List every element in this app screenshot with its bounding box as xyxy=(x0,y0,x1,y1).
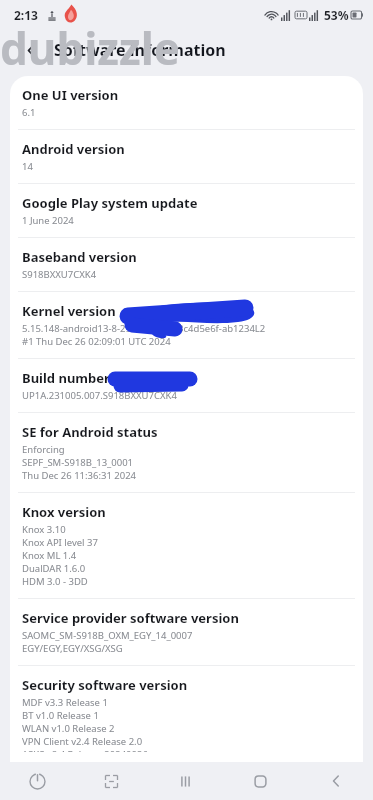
button[interactable]: Baseband version xyxy=(10,238,363,291)
button[interactable]: Kernel version xyxy=(10,292,363,358)
staticText: 5.15.148-android13-8-29548-g1a2b3c4d5e6f… xyxy=(22,322,266,335)
staticText: SE for Android status xyxy=(22,423,158,441)
staticText: SEPF_SM-S918B_13_0001 xyxy=(22,456,134,469)
staticText: Security software version xyxy=(22,676,188,694)
button[interactable]: One UI version xyxy=(10,76,363,129)
button[interactable]: Back xyxy=(14,33,48,67)
staticText: Build number xyxy=(22,369,110,387)
staticText: 14 xyxy=(22,160,33,173)
staticText: WLAN v1.0 Release 2 xyxy=(22,722,115,735)
button[interactable]: Power xyxy=(0,762,74,800)
staticText: Android version xyxy=(22,140,125,158)
staticText: 1 June 2024 xyxy=(22,214,74,227)
staticText: MDF v3.3 Release 1 xyxy=(22,696,108,709)
staticText: UP1A.231005.007.S918BXXU7CXK4 xyxy=(22,389,177,402)
staticText: SAOMC_SM-S918B_OXM_EGY_14_0007 xyxy=(22,629,193,642)
staticText: Enforcing xyxy=(22,443,65,456)
button[interactable]: Build number xyxy=(10,359,363,412)
staticText: S918BXXU7CXK4 xyxy=(22,268,97,281)
staticText: HDM 3.0 - 3DD xyxy=(22,575,88,588)
staticText: One UI version xyxy=(22,86,119,104)
staticText: Service provider software version xyxy=(22,609,239,627)
button[interactable]: Knox version xyxy=(10,493,363,598)
staticText: VPN Client v2.4 Release 2.0 xyxy=(22,735,143,748)
button[interactable]: SE for Android status xyxy=(10,413,363,492)
button[interactable]: Security software version xyxy=(10,666,363,762)
staticText: EGY/EGY,EGY/XSG/XSG xyxy=(22,642,123,655)
staticText: DualDAR 1.6.0 xyxy=(22,562,86,575)
staticText: Knox 3.10 xyxy=(22,523,66,536)
staticText: 53% xyxy=(324,7,349,23)
button[interactable]: Recents xyxy=(148,762,223,800)
button[interactable]: Home xyxy=(223,762,298,800)
button[interactable]: Back xyxy=(298,762,373,800)
staticText: 6.1 xyxy=(22,106,36,119)
button[interactable]: Service provider software version xyxy=(10,599,363,665)
staticText: Thu Dec 26 11:36:31 2024 xyxy=(22,469,137,482)
button[interactable]: Google Play system update xyxy=(10,184,363,237)
button[interactable]: Screenshot xyxy=(74,762,148,800)
staticText: Baseband version xyxy=(22,248,137,266)
staticText: 2:13 xyxy=(14,7,38,23)
staticText: Kernel version xyxy=(22,302,116,320)
staticText: dubizzle xyxy=(0,18,373,78)
staticText: BT v1.0 Release 1 xyxy=(22,709,99,722)
button[interactable]: Android version xyxy=(10,130,363,183)
staticText: ASKS v8.4 Release 20240026 xyxy=(22,748,148,752)
staticText: Google Play system update xyxy=(22,194,198,212)
staticText: Knox ML 1.4 xyxy=(22,549,77,562)
staticText: #1 Thu Dec 26 02:09:01 UTC 2024 xyxy=(22,335,171,348)
staticText: Software information xyxy=(54,39,226,61)
staticText: Knox API level 37 xyxy=(22,536,98,549)
staticText: Knox version xyxy=(22,503,106,521)
